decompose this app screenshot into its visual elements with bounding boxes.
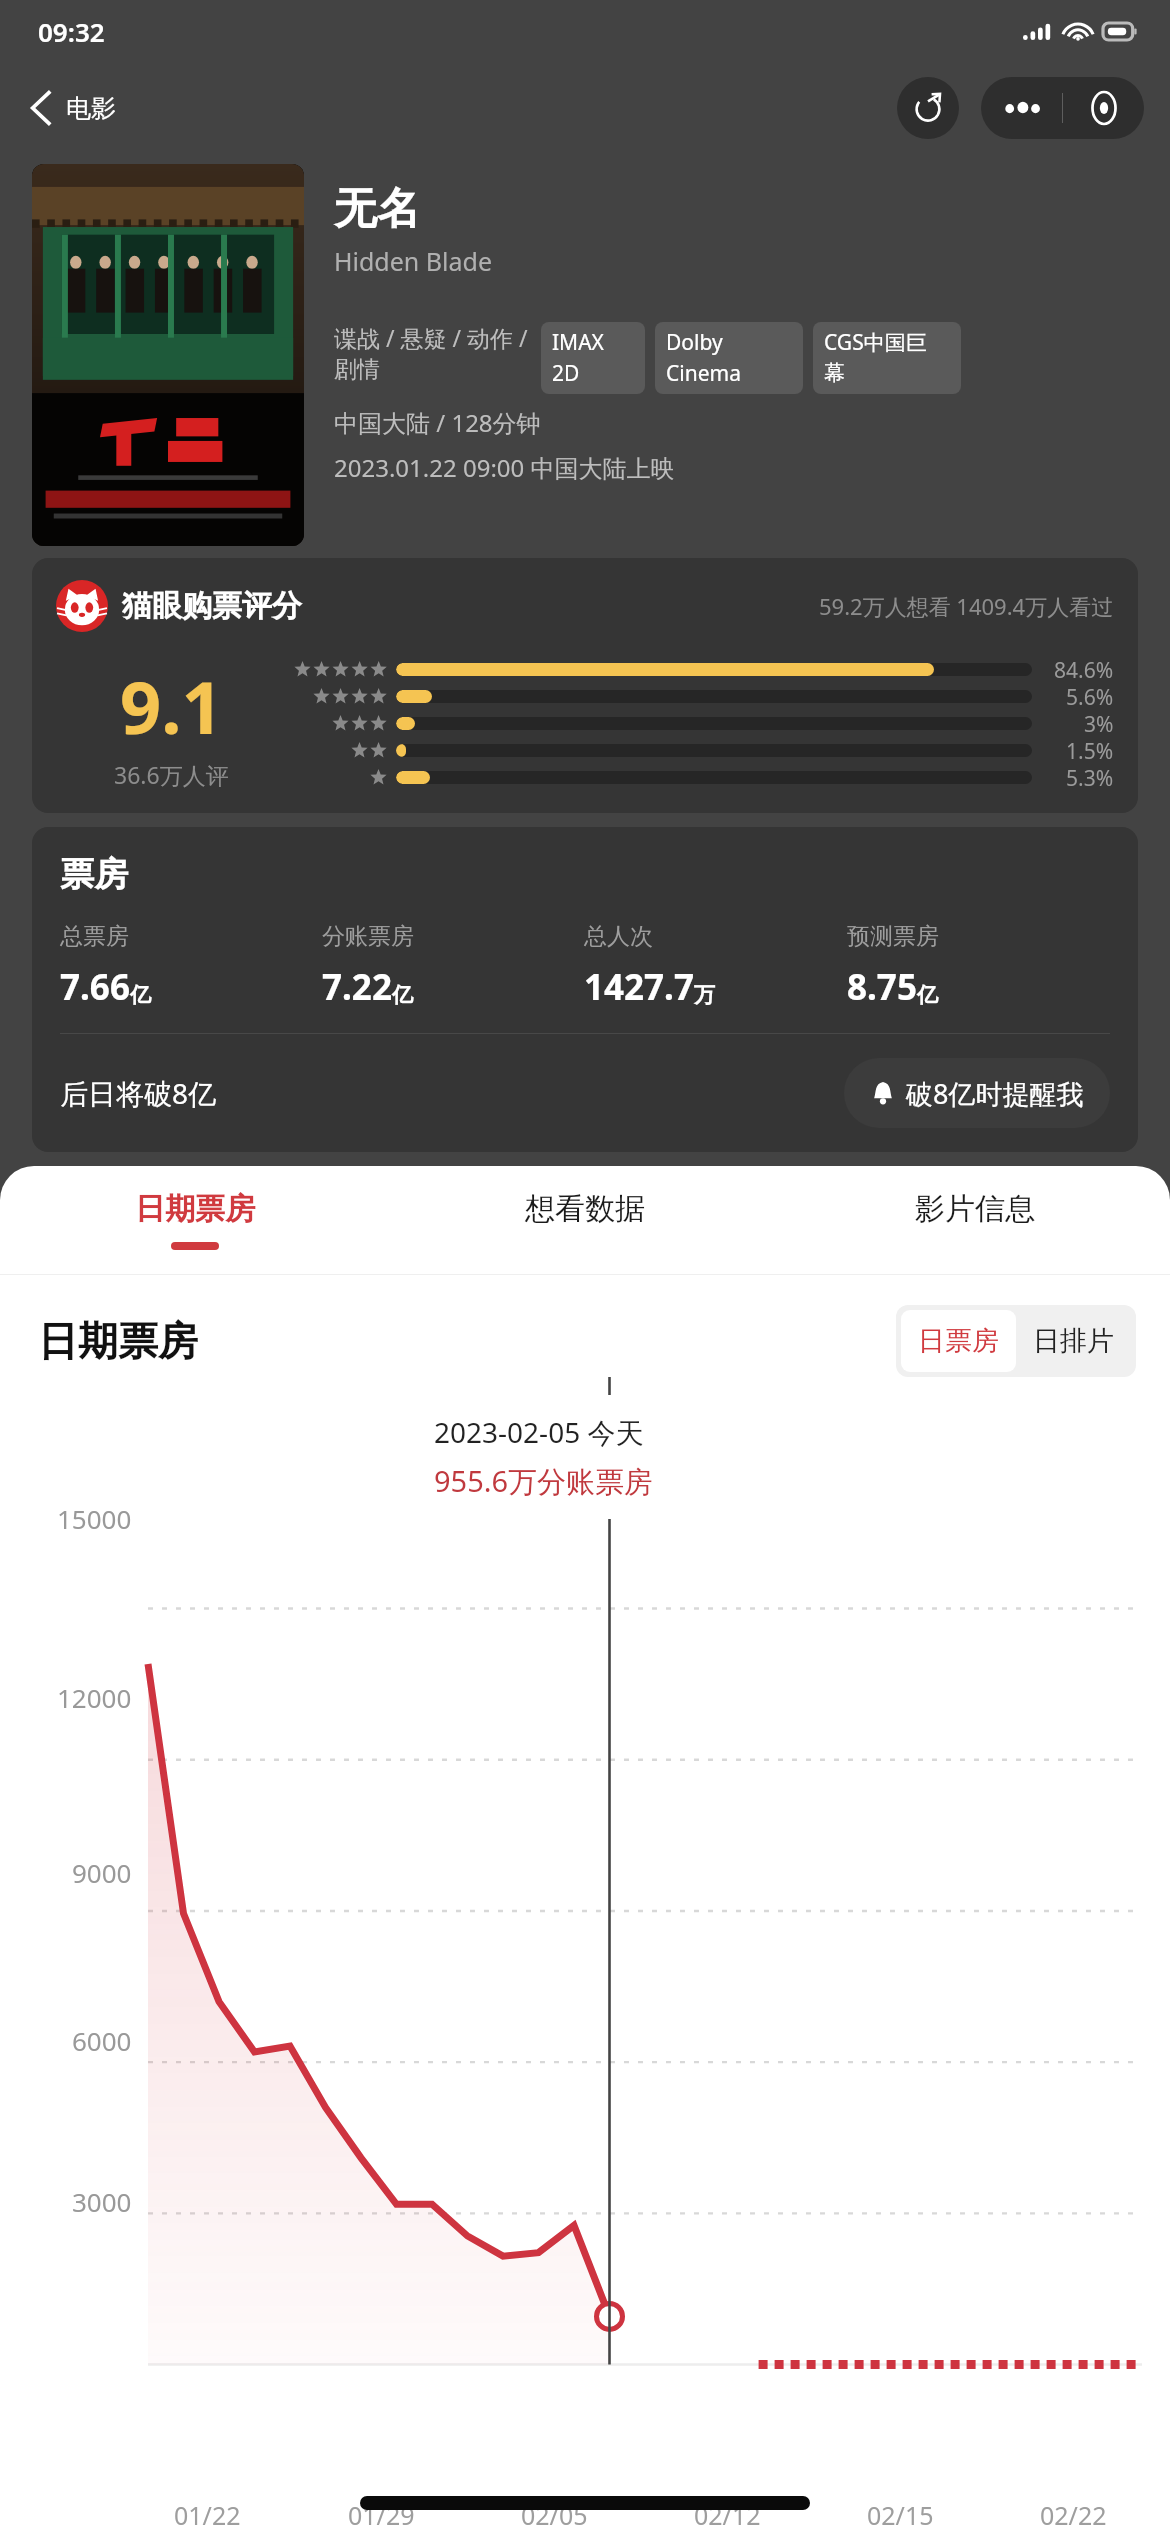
staticText: Dolby Cinema <box>666 328 741 387</box>
staticText: 总票房 <box>60 922 129 951</box>
staticText: 2023-02-05 今天 <box>434 1413 644 1451</box>
staticText: 02/22 <box>1040 2498 1107 2532</box>
staticText: 总人次 <box>584 922 653 951</box>
staticText: 3% <box>1084 710 1114 737</box>
staticText: 影片信息 <box>915 1190 1035 1228</box>
staticText: 6000 <box>72 2023 132 2058</box>
button[interactable]: 想看数据 <box>390 1166 780 1274</box>
button[interactable]: Close <box>1063 77 1144 139</box>
staticText: 955.6万分账票房 <box>434 1461 654 1501</box>
staticText: 破8亿时提醒我 <box>906 1075 1084 1112</box>
staticText: 预测票房 <box>847 922 939 951</box>
staticText: 8.75 <box>847 963 917 1011</box>
staticText: 01/29 <box>348 2498 415 2532</box>
staticText: 票房 <box>60 853 128 896</box>
button[interactable]: CGS中国巨 幕 <box>813 322 961 394</box>
staticText: 日期票房 <box>38 1316 198 1366</box>
staticText: 5.6% <box>1066 683 1114 710</box>
staticText: 9.1 <box>120 657 223 755</box>
staticText: 想看数据 <box>525 1190 645 1228</box>
staticText: 日票房 <box>918 1324 999 1358</box>
staticText: 谍战 / 悬疑 / 动作 / 剧情 <box>334 322 529 384</box>
staticText: 02/05 <box>521 2498 588 2532</box>
staticText: IMAX 2D <box>552 328 604 387</box>
button[interactable]: 票房 <box>32 827 1138 1152</box>
staticText: 84.6% <box>1054 656 1114 683</box>
staticText: 万 <box>694 982 715 1008</box>
staticText: 02/12 <box>694 2498 761 2532</box>
button[interactable]: Back <box>22 83 124 133</box>
staticText: 亿 <box>130 982 151 1008</box>
staticText: 1.5% <box>1066 737 1114 764</box>
staticText: 亿 <box>917 982 938 1008</box>
staticText: 中国大陆 / 128分钟 <box>334 406 541 439</box>
staticText: 分账票房 <box>322 922 414 951</box>
staticText: 7.66 <box>60 963 130 1011</box>
staticText: 2023.01.22 09:00 中国大陆上映 <box>334 451 675 484</box>
staticText: 3000 <box>72 2184 132 2219</box>
staticText: 日期票房 <box>135 1190 255 1228</box>
staticText: 无名 <box>334 182 420 236</box>
staticText: Hidden Blade <box>334 244 492 278</box>
button[interactable]: 影片信息 <box>780 1166 1170 1274</box>
staticText: 猫眼购票评分 <box>122 587 302 625</box>
staticText: 01/22 <box>174 2498 241 2532</box>
staticText: 后日将破8亿 <box>60 1074 217 1112</box>
button[interactable]: 破8亿时提醒我 <box>844 1058 1110 1128</box>
staticText: CGS中国巨 幕 <box>824 328 927 387</box>
button[interactable]: 日票房 <box>901 1310 1016 1372</box>
button[interactable]: 猫眼购票评分 <box>32 558 1138 813</box>
other: Back <box>30 89 52 127</box>
staticText: 59.2万人想看 1409.4万人看过 <box>819 591 1114 621</box>
staticText: 36.6万人评 <box>114 759 229 790</box>
button[interactable]: 日期票房 <box>0 1166 390 1274</box>
staticText: 15000 <box>57 1501 132 1536</box>
staticText: 电影 <box>66 93 116 124</box>
staticText: 9000 <box>72 1855 132 1890</box>
staticText: 12000 <box>57 1680 132 1715</box>
button[interactable]: More <box>981 77 1062 139</box>
button[interactable]: IMAX 2D <box>541 322 645 394</box>
button[interactable]: Dolby Cinema <box>655 322 803 394</box>
button[interactable] <box>32 164 304 546</box>
staticText: 日排片 <box>1033 1324 1114 1358</box>
staticText: 1427.7 <box>584 963 694 1011</box>
staticText: 5.3% <box>1066 764 1114 791</box>
staticText: 亿 <box>392 982 413 1008</box>
button[interactable]: 日排片 <box>1016 1310 1131 1372</box>
staticText: 09:32 <box>38 14 105 49</box>
staticText: 7.22 <box>322 963 392 1011</box>
button[interactable]: Share <box>897 77 959 139</box>
staticText: 02/15 <box>867 2498 934 2532</box>
